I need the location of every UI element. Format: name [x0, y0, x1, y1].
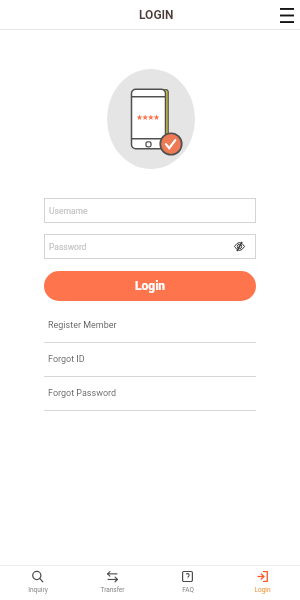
button[interactable]: Menu [274, 2, 300, 28]
button[interactable]: Password [44, 234, 256, 259]
staticText: Forgot Password [48, 388, 117, 399]
button[interactable]: Show password [232, 239, 247, 254]
button[interactable]: Inquiry [0, 566, 75, 600]
button[interactable]: Forgot ID [44, 343, 256, 377]
button[interactable]: FAQ [150, 566, 225, 600]
staticText: Register Member [48, 320, 117, 331]
button[interactable]: Login [44, 271, 256, 301]
button[interactable]: Login [225, 566, 300, 600]
staticText: Login [135, 279, 166, 293]
button[interactable]: Forgot Password [44, 377, 256, 411]
staticText: Forgot ID [48, 354, 85, 365]
staticText: Password [49, 242, 87, 252]
staticText: Login [254, 586, 271, 594]
button[interactable]: Register Member [44, 309, 256, 343]
staticText: FAQ [182, 586, 194, 594]
staticText: LOGIN [139, 8, 174, 22]
staticText: Username [49, 206, 88, 216]
staticText: Inquiry [28, 586, 48, 594]
button[interactable]: Username [44, 198, 256, 223]
staticText: Transfer [100, 586, 125, 594]
button[interactable]: Transfer [75, 566, 150, 600]
